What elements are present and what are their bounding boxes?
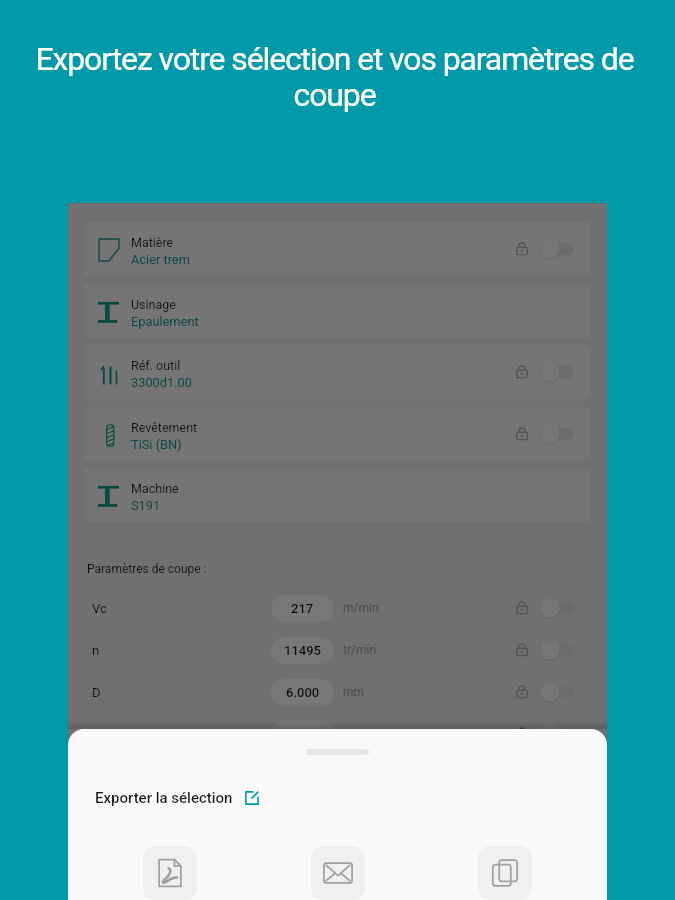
staticText: Revêtement — [131, 420, 198, 435]
button[interactable]: Revêtement — [84, 407, 591, 461]
button[interactable]: Machine — [84, 468, 591, 522]
staticText: 6.000 — [286, 685, 320, 700]
staticText: tr/min — [343, 643, 377, 657]
staticText: S191 — [131, 498, 161, 513]
button[interactable]: Copy — [478, 846, 532, 900]
staticText: 3300d1.00 — [131, 375, 192, 390]
staticText: n — [92, 643, 100, 658]
staticText: Epaulement — [131, 314, 199, 329]
staticText: Machine — [131, 481, 179, 496]
button[interactable]: Vc — [84, 587, 591, 629]
button[interactable]: Réf. outil — [84, 345, 591, 399]
button[interactable]: Usinage — [84, 284, 591, 338]
staticText: m/min — [343, 601, 379, 615]
button[interactable]: Matière — [84, 222, 591, 276]
staticText: Exporter la sélection — [95, 789, 233, 807]
staticText: Matière — [131, 235, 174, 250]
button[interactable]: f — [84, 713, 591, 755]
staticText: 217 — [291, 601, 314, 616]
staticText: Réf. outil — [131, 358, 181, 373]
button[interactable]: n — [84, 629, 591, 671]
staticText: TiSi (BN) — [131, 437, 182, 452]
button[interactable]: Export PDF — [143, 846, 197, 900]
staticText: f — [92, 727, 97, 742]
staticText: Usinage — [131, 297, 176, 312]
staticText: mm/tr — [343, 727, 377, 741]
staticText: Exportez votre sélection et vos paramètr… — [24, 40, 645, 113]
staticText: 11495 — [284, 643, 321, 658]
button[interactable]: Exporter la sélection — [95, 789, 260, 807]
staticText: 0.100 — [286, 727, 320, 742]
button[interactable]: D — [84, 671, 591, 713]
staticText: D — [92, 685, 101, 700]
button[interactable]: Send by email — [311, 846, 365, 900]
staticText: Vc — [92, 601, 107, 616]
staticText: mm — [343, 685, 365, 699]
staticText: Acier trem — [131, 252, 190, 267]
staticText: Paramètres de coupe : — [87, 562, 207, 576]
